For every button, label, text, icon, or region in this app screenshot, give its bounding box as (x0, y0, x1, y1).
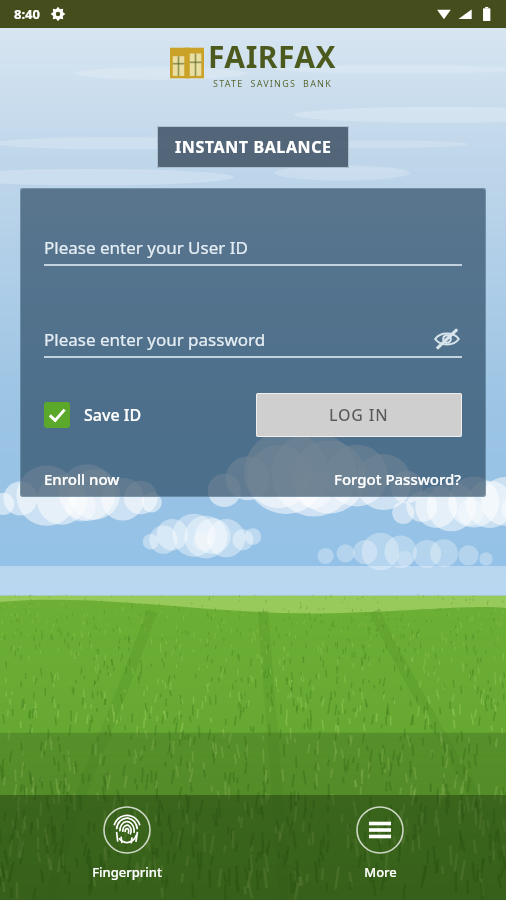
staticText: Please enter your User ID (44, 236, 248, 259)
button[interactable]: Save ID (44, 402, 142, 428)
staticText: Enroll now (44, 469, 120, 489)
button[interactable]: INSTANT BALANCE (157, 126, 349, 168)
button[interactable]: Enroll now (44, 465, 120, 493)
staticText: Fingerprint (92, 863, 162, 881)
button[interactable]: Fingerprint login (0, 795, 253, 900)
button[interactable]: Please enter your User ID (44, 230, 462, 264)
button[interactable]: LOG IN (256, 393, 462, 437)
other: More options (356, 806, 404, 854)
staticText: INSTANT BALANCE (175, 136, 332, 158)
button[interactable]: More options (253, 795, 506, 900)
staticText: Save ID (84, 404, 142, 426)
button[interactable]: Please enter your password (44, 322, 462, 356)
button[interactable]: Forgot Password? (334, 465, 462, 493)
staticText: LOG IN (329, 404, 389, 426)
staticText: Forgot Password? (334, 469, 462, 489)
staticText: More (364, 863, 397, 881)
other: Fingerprint login (103, 806, 151, 854)
button[interactable]: Show password (432, 324, 462, 354)
staticText: Please enter your password (44, 328, 266, 351)
staticText: STATE SAVINGS BANK (213, 77, 332, 89)
staticText: FAIRFAX (208, 36, 337, 77)
staticText: 8:40 (14, 5, 40, 23)
